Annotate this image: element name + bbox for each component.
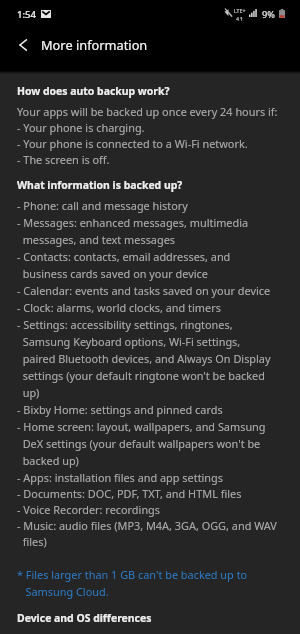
staticText: More information [41, 36, 148, 53]
staticText: 9% [262, 8, 275, 21]
staticText: - Phone: call and message history - Mess… [17, 197, 271, 486]
staticText: 1:54 [17, 8, 37, 21]
staticText: * Files larger than 1 GB can't be backed… [17, 565, 248, 599]
staticText: What information is backed up? [17, 176, 183, 192]
staticText: 4↑ [236, 15, 244, 22]
staticText: Device and OS differences [17, 609, 152, 625]
staticText: LTE+ [234, 7, 246, 14]
staticText: Your apps will be backed up once every 2… [17, 104, 278, 168]
staticText: How does auto backup work? [17, 82, 170, 98]
staticText: - Documents: DOC, PDF, TXT, and HTML fil… [17, 486, 277, 550]
button[interactable]: Navigate up [5, 27, 41, 63]
